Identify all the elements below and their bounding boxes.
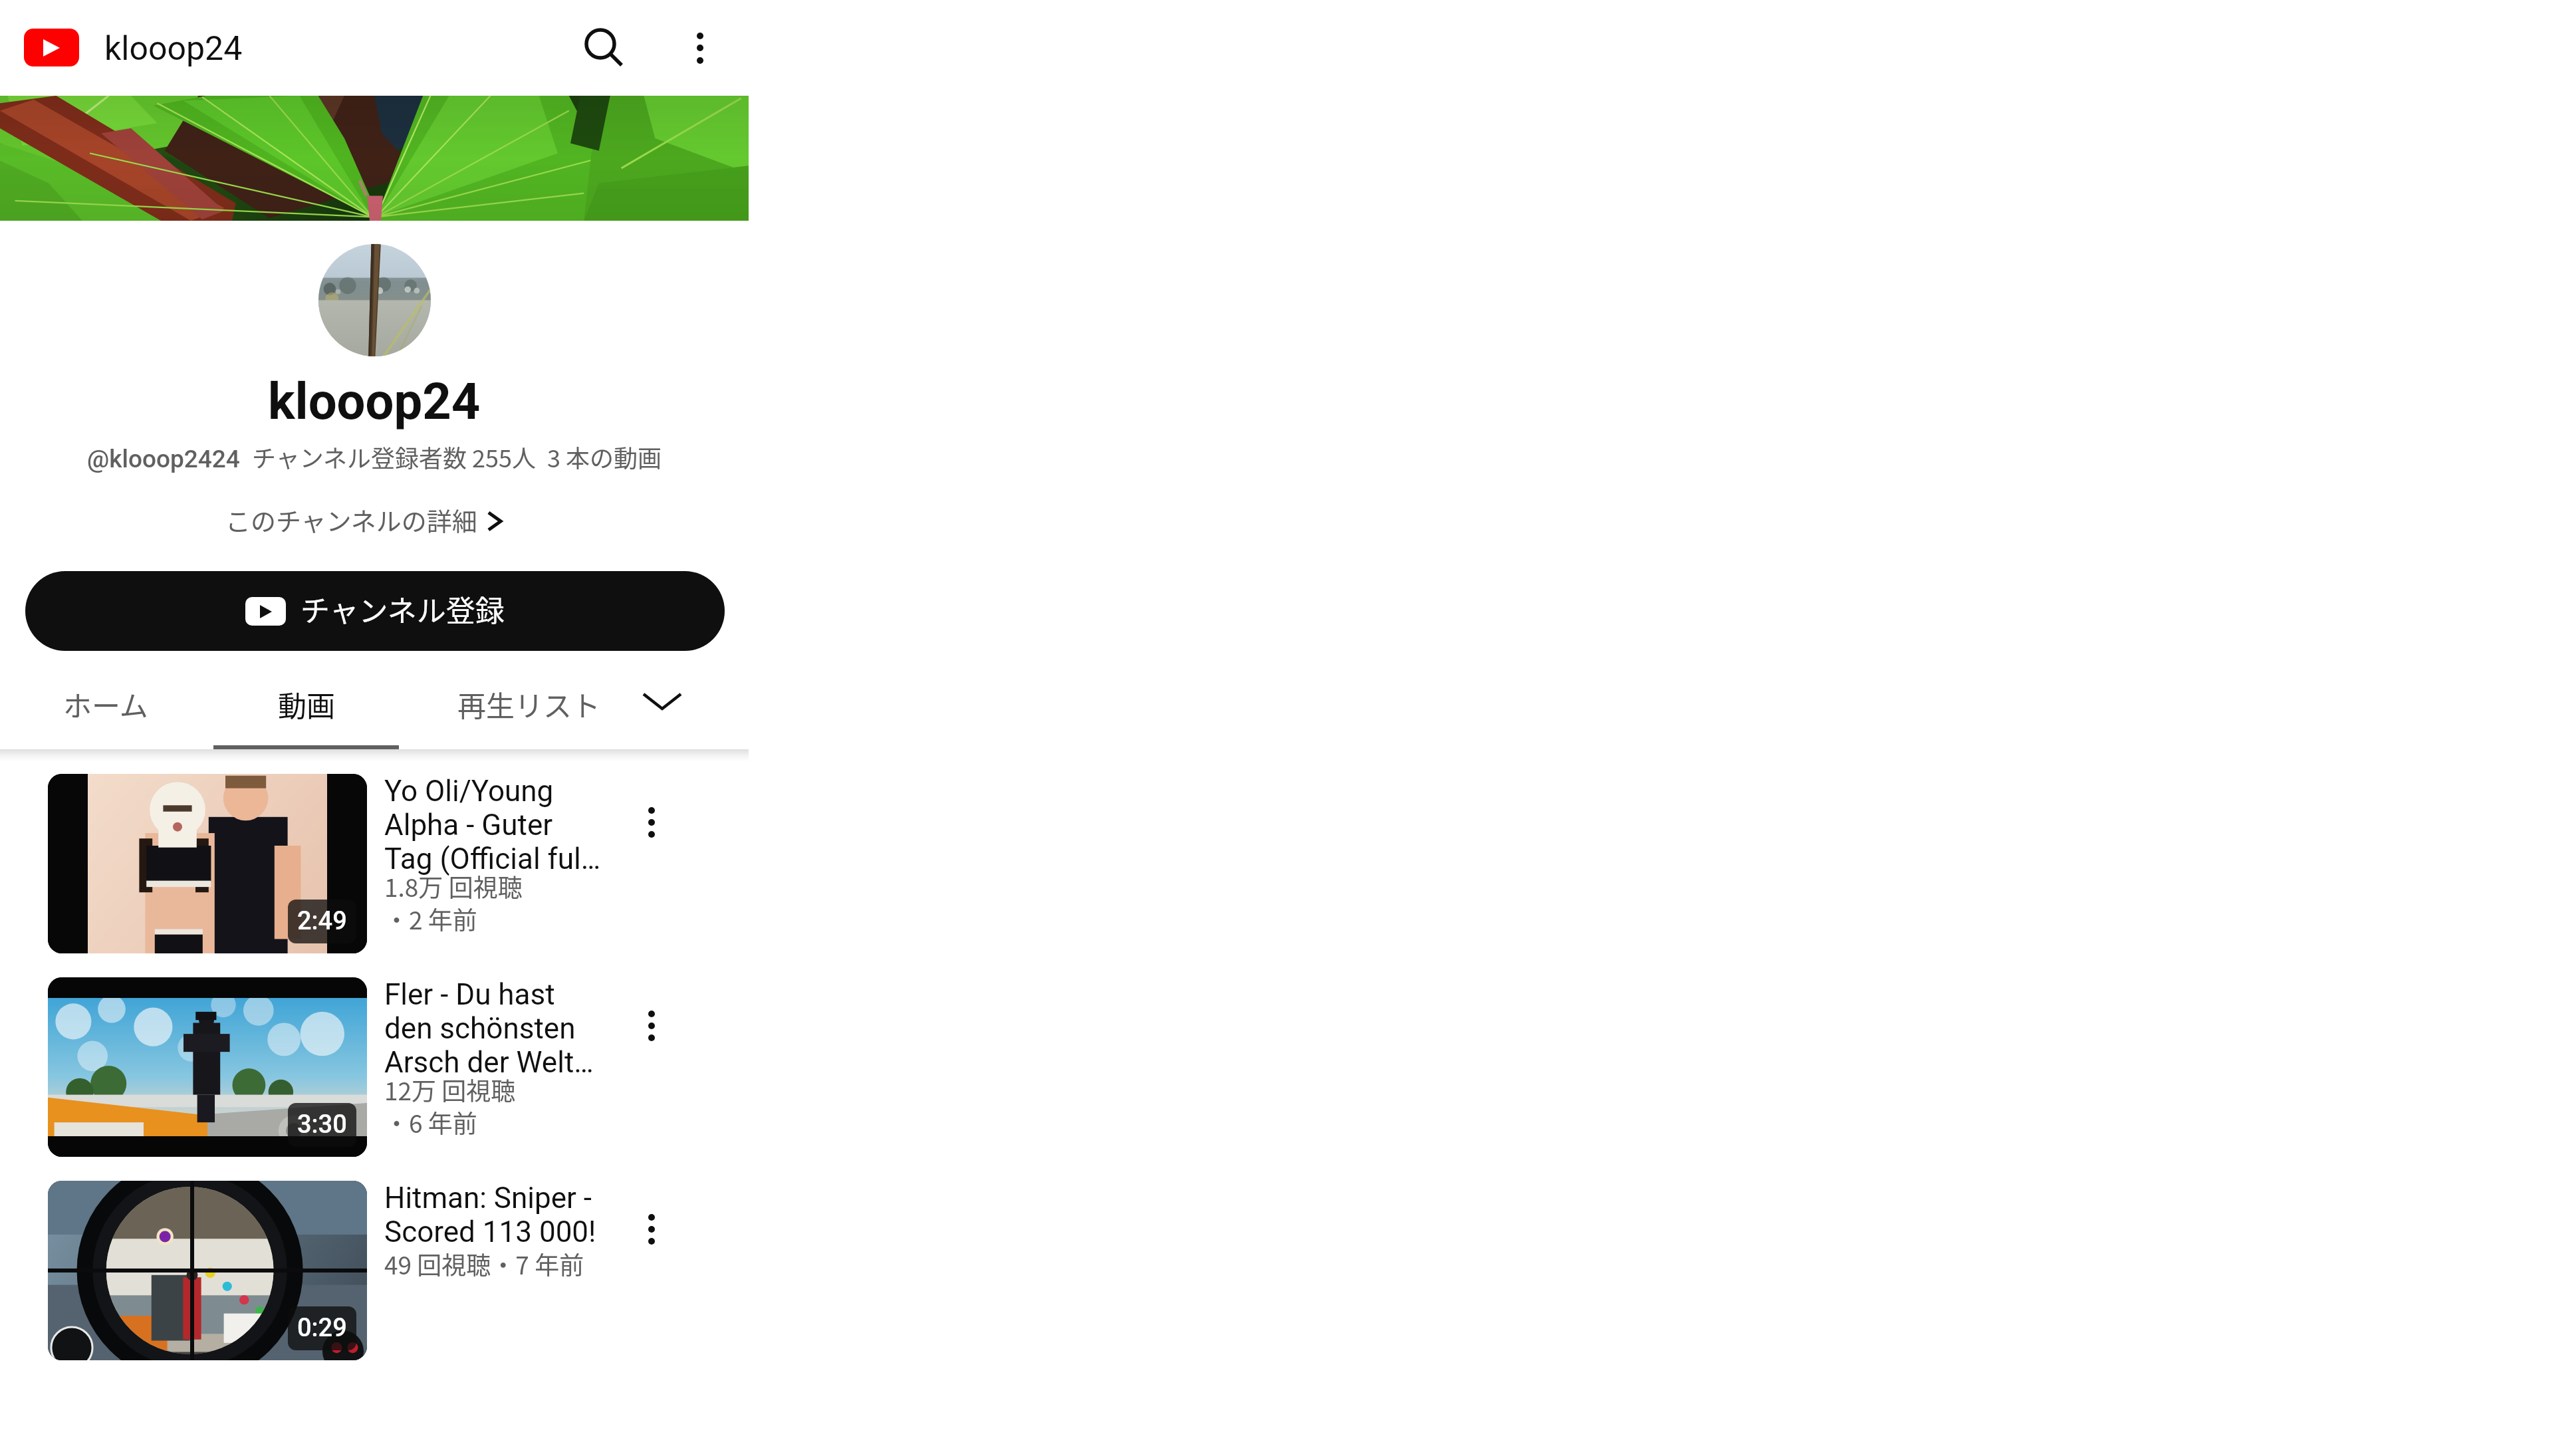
staticText: Yo Oli/Young Alpha - Guter Tag (Official… [384, 775, 650, 876]
staticText: 1.8万 回視聴 [384, 871, 523, 904]
staticText: ・6 年前 [384, 1107, 477, 1140]
button[interactable]: 再生リスト [398, 669, 660, 753]
staticText: 動画 [278, 690, 335, 723]
button[interactable]: Show more tabs [629, 668, 695, 734]
staticText: 0:29 [297, 1314, 347, 1342]
button[interactable]: このチャンネルの詳細 [225, 505, 503, 537]
button[interactable]: 3:30 [32, 965, 614, 1169]
staticText: チャンネル登録 [301, 594, 505, 628]
button[interactable]: ホーム [1, 669, 210, 753]
staticText: ・2 年前 [384, 904, 477, 936]
button[interactable]: More options [664, 11, 737, 84]
button[interactable]: Video options [615, 786, 688, 859]
staticText: 再生リスト [457, 690, 600, 723]
button[interactable]: Video options [615, 1193, 688, 1266]
button[interactable]: Search [564, 11, 637, 84]
staticText: klooop24 [104, 29, 243, 67]
staticText: Hitman: Sniper - Scored 113 000! [384, 1181, 650, 1249]
staticText: klooop24 [268, 374, 481, 431]
staticText: 12万 回視聴 [384, 1074, 516, 1107]
staticText: 3 本の動画 [547, 441, 662, 474]
button[interactable]: 0:29 [32, 1169, 614, 1372]
button[interactable]: YouTube home [24, 29, 79, 66]
staticText: このチャンネルの詳細 [225, 505, 477, 537]
staticText: 2:49 [297, 908, 347, 935]
staticText: Fler - Du hast den schönsten Arsch der W… [384, 978, 650, 1080]
button[interactable]: 2:49 [32, 762, 614, 965]
button[interactable]: Video options [615, 989, 688, 1062]
button[interactable]: 動画 [213, 669, 399, 753]
staticText: 3:30 [297, 1111, 347, 1139]
button[interactable]: チャンネル登録 [25, 571, 725, 651]
staticText: チャンネル登録者数 255人 [252, 441, 536, 474]
staticText: @klooop2424 [87, 441, 240, 474]
staticText: ホーム [63, 690, 148, 723]
staticText: 49 回視聴・7 年前 [384, 1249, 584, 1281]
button[interactable]: Channel profile picture [318, 244, 431, 356]
